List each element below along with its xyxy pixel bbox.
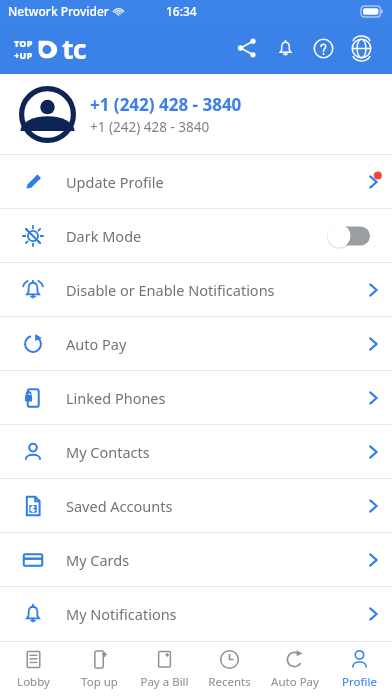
button[interactable]: Language xyxy=(342,29,380,67)
button[interactable]: My Cards xyxy=(0,533,392,586)
button[interactable]: Update Profile xyxy=(0,155,392,208)
staticText: Pay a Bill xyxy=(140,674,189,690)
button[interactable]: Recents xyxy=(197,642,262,696)
button[interactable]: Auto Pay xyxy=(262,642,327,696)
button[interactable]: Disable or Enable Notifications xyxy=(0,263,392,316)
staticText: Profile xyxy=(342,674,377,690)
staticText: Network Provider xyxy=(8,3,109,19)
staticText: tc xyxy=(62,30,86,67)
staticText: +UP xyxy=(14,49,33,61)
staticText: Auto Pay xyxy=(271,674,319,690)
staticText: +1 (242) 428 - 3840 xyxy=(90,93,242,116)
staticText: +1 (242) 428 - 3840 xyxy=(90,118,210,136)
button[interactable]: Auto Pay xyxy=(0,317,392,370)
staticText: TOP xyxy=(14,37,33,49)
staticText: Linked Phones xyxy=(66,388,354,408)
staticText: Dark Mode xyxy=(66,226,327,246)
staticText: Auto Pay xyxy=(66,334,354,354)
button[interactable]: My Contacts xyxy=(0,425,392,478)
button[interactable]: My Notifications xyxy=(0,587,392,640)
button[interactable]: Linked Phones xyxy=(0,371,392,424)
staticText: Lobby xyxy=(17,674,50,690)
staticText: My Notifications xyxy=(66,604,354,624)
button[interactable]: Share xyxy=(228,29,266,67)
button[interactable]: Dark Mode xyxy=(0,209,392,262)
staticText: 16:34 xyxy=(166,3,197,19)
staticText: Top up xyxy=(81,674,118,690)
button[interactable]: Lobby xyxy=(0,642,66,696)
staticText: My Contacts xyxy=(66,442,354,462)
button[interactable]: Profile xyxy=(327,642,392,696)
button[interactable]: Top up xyxy=(66,642,132,696)
button[interactable]: Saved Accounts xyxy=(0,479,392,532)
button[interactable]: Notifications xyxy=(266,29,304,67)
button[interactable]: Pay a Bill xyxy=(132,642,197,696)
button[interactable]: +1 (242) 428 - 3840 xyxy=(0,74,392,154)
staticText: Recents xyxy=(208,674,251,690)
staticText: Disable or Enable Notifications xyxy=(66,280,354,300)
staticText: Update Profile xyxy=(66,172,354,192)
button[interactable]: Help xyxy=(304,29,342,67)
staticText: My Cards xyxy=(66,550,354,570)
staticText: Saved Accounts xyxy=(66,496,354,516)
